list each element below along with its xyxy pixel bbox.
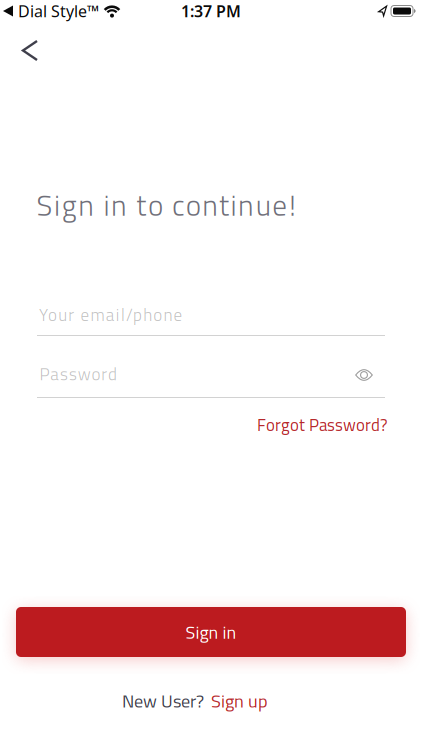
button[interactable]: Sign up bbox=[211, 687, 268, 715]
staticText: Sign up bbox=[211, 687, 268, 715]
button[interactable]: Sign in bbox=[16, 607, 406, 657]
staticText: Your email/phone bbox=[39, 302, 182, 328]
staticText: New User? bbox=[122, 687, 204, 715]
staticText: Password bbox=[39, 361, 117, 387]
staticText: 1:37 PM bbox=[181, 0, 241, 22]
button[interactable]: Back bbox=[8, 28, 52, 72]
button[interactable]: Forgot Password? bbox=[257, 412, 388, 438]
staticText: Dial Style™ bbox=[18, 0, 99, 22]
button[interactable]: Show password bbox=[349, 362, 379, 388]
staticText: Sign in bbox=[185, 618, 236, 646]
staticText: Sign in to continue! bbox=[36, 183, 296, 227]
staticText: Forgot Password? bbox=[257, 412, 388, 438]
